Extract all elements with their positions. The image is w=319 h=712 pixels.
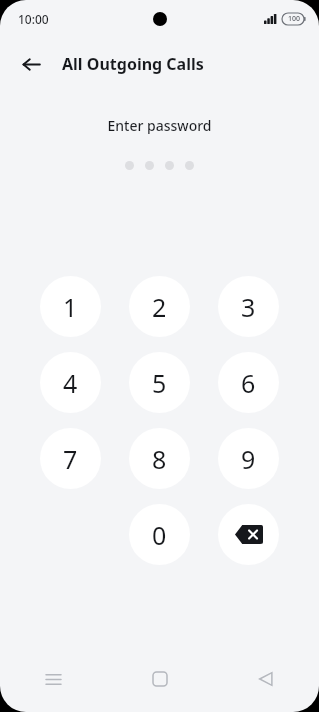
button[interactable]: 3	[218, 276, 279, 337]
button[interactable]: 0	[129, 504, 190, 565]
staticText: Enter password	[0, 116, 319, 135]
staticText: 3	[241, 290, 256, 324]
button[interactable]: 5	[129, 352, 190, 413]
button[interactable]: 4	[40, 352, 101, 413]
button[interactable]: 2	[129, 276, 190, 337]
staticText: 0	[152, 518, 167, 552]
button[interactable]: 7	[40, 428, 101, 489]
staticText: All Outgoing Calls	[62, 53, 204, 75]
button[interactable]: 9	[218, 428, 279, 489]
staticText: 5	[152, 366, 167, 400]
staticText: 10:00	[18, 11, 49, 27]
button[interactable]: 1	[40, 276, 101, 337]
staticText: 1	[63, 290, 78, 324]
staticText: 7	[63, 442, 78, 476]
button[interactable]: Back	[213, 655, 319, 703]
button[interactable]: 8	[129, 428, 190, 489]
staticText: 8	[152, 442, 167, 476]
button[interactable]: Delete	[218, 504, 279, 565]
button[interactable]: 6	[218, 352, 279, 413]
staticText: 9	[241, 442, 256, 476]
staticText: 2	[152, 290, 167, 324]
staticText: 6	[241, 366, 256, 400]
button[interactable]: Back	[14, 47, 48, 81]
button[interactable]: Recent apps	[0, 655, 107, 703]
button[interactable]: Home	[107, 655, 213, 703]
staticText: 100	[288, 14, 301, 24]
staticText: 4	[63, 366, 78, 400]
